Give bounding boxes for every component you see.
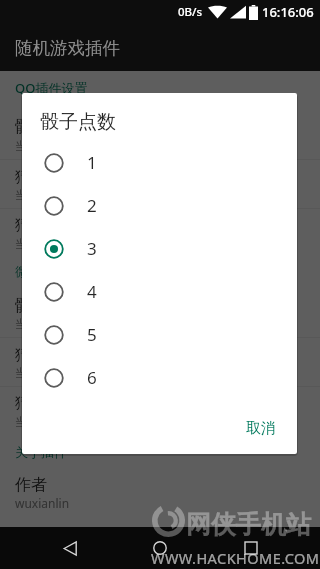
- staticText: WWW.HACKHOME.COM: [151, 548, 320, 568]
- staticText: 16:16:06: [262, 3, 314, 21]
- staticText: 猜数范围: [15, 393, 79, 413]
- button[interactable]: 1: [22, 141, 297, 184]
- button[interactable]: 6: [22, 356, 297, 399]
- staticText: 2: [87, 194, 97, 217]
- button[interactable]: 4: [22, 270, 297, 313]
- button[interactable]: 作者: [0, 469, 320, 517]
- button[interactable]: Back: [49, 527, 91, 569]
- staticText: 随机游戏插件: [15, 37, 120, 59]
- button[interactable]: 猜数范围: [0, 209, 320, 257]
- button[interactable]: 骰子点数: [0, 111, 320, 159]
- staticText: 4: [87, 280, 97, 303]
- staticText: 0B/s: [178, 4, 203, 20]
- button[interactable]: 猜数范围: [0, 387, 320, 435]
- staticText: 微信插件设置: [15, 263, 93, 279]
- staticText: 猜拳手势: [15, 167, 79, 187]
- button[interactable]: Home: [139, 527, 181, 569]
- button[interactable]: Recents: [230, 527, 272, 569]
- staticText: 当前点数为 3: [15, 137, 85, 153]
- staticText: 当前手势为随机: [15, 187, 99, 202]
- staticText: 3: [87, 237, 97, 260]
- staticText: 骰子点数: [40, 110, 116, 134]
- button[interactable]: 2: [22, 184, 297, 227]
- staticText: 网侠手机站: [186, 509, 311, 540]
- staticText: 作者: [15, 475, 47, 495]
- staticText: 当前点数为随机: [15, 316, 99, 331]
- staticText: 取消: [246, 419, 276, 438]
- staticText: 当前手势为随机: [15, 365, 99, 380]
- button[interactable]: 5: [22, 313, 297, 356]
- staticText: 1: [87, 151, 97, 174]
- button[interactable]: 取消: [225, 403, 297, 454]
- staticText: 骰子点数: [15, 117, 79, 137]
- staticText: 当前范围 1-100: [15, 235, 98, 251]
- button[interactable]: 3: [22, 227, 297, 270]
- button[interactable]: 猜拳手势: [0, 160, 320, 208]
- staticText: 关于插件: [15, 444, 67, 460]
- staticText: QQ插件设置: [15, 79, 88, 97]
- staticText: 骰子点数: [15, 296, 79, 316]
- staticText: 当前范围 1-100: [15, 413, 98, 429]
- staticText: 猜拳手势: [15, 345, 79, 365]
- button[interactable]: 猜拳手势: [0, 338, 320, 386]
- staticText: wuxianlin: [15, 495, 70, 511]
- staticText: 5: [87, 323, 97, 346]
- staticText: 猜数范围: [15, 215, 79, 235]
- staticText: 6: [87, 366, 97, 389]
- button[interactable]: 骰子点数: [0, 289, 320, 337]
